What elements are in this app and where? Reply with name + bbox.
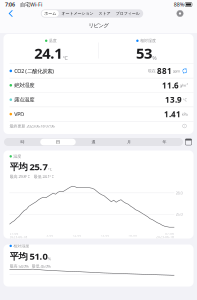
button[interactable]: 日 bbox=[40, 139, 76, 145]
button[interactable]: プロフィール bbox=[113, 10, 142, 17]
staticText: 13.9 bbox=[165, 94, 182, 105]
staticText: 881 bbox=[157, 66, 172, 76]
button[interactable]: 月 bbox=[111, 139, 147, 145]
button[interactable]: Information bbox=[181, 123, 187, 129]
staticText: g/m³ bbox=[179, 83, 187, 88]
button[interactable]: Calendar bbox=[183, 138, 194, 146]
staticText: 11.6 bbox=[162, 80, 179, 91]
staticText: 2023-06-18 bbox=[9, 236, 27, 239]
staticText: 年 bbox=[162, 139, 166, 144]
staticText: 露点温度 bbox=[14, 96, 34, 103]
staticText: ストア bbox=[99, 11, 111, 16]
staticText: 28.0 bbox=[175, 190, 182, 195]
button[interactable]: 絶対湿度 bbox=[3, 78, 193, 92]
staticText: 時 bbox=[20, 139, 24, 144]
staticText: 12:00 bbox=[72, 234, 81, 237]
staticText: 温度 bbox=[49, 38, 57, 43]
staticText: オートメーション bbox=[61, 11, 93, 16]
staticText: 15:00 bbox=[100, 234, 109, 237]
staticText: 平均 25.7 bbox=[9, 160, 47, 173]
staticText: 9:00 bbox=[46, 234, 53, 237]
staticText: 18:00 bbox=[128, 234, 137, 237]
button[interactable]: 時 bbox=[5, 139, 40, 145]
staticText: 07:06 bbox=[165, 232, 174, 235]
staticText: プロフィール bbox=[116, 11, 140, 16]
button[interactable]: 週 bbox=[76, 139, 111, 145]
staticText: 相対湿度 bbox=[140, 38, 156, 43]
staticText: kPa bbox=[181, 111, 187, 117]
staticText: ホーム bbox=[44, 11, 56, 16]
button[interactable]: 露点温度 bbox=[3, 93, 193, 107]
staticText: 絶対湿度 bbox=[14, 82, 34, 89]
staticText: 25.0 bbox=[175, 211, 182, 217]
button[interactable]: オートメーション bbox=[59, 10, 96, 17]
staticText: 1.41 bbox=[164, 109, 181, 119]
staticText: °C bbox=[48, 167, 53, 172]
staticText: 現在 bbox=[148, 68, 156, 73]
button[interactable]: Back bbox=[4, 8, 18, 18]
staticText: 週 bbox=[91, 139, 95, 144]
staticText: 平均 51.0 bbox=[9, 250, 47, 262]
staticText: °C bbox=[63, 54, 68, 61]
staticText: ppm bbox=[172, 68, 180, 73]
staticText: 7:06 bbox=[5, 1, 15, 8]
staticText: VPD bbox=[14, 111, 24, 118]
staticText: 最高 29.8°C 最低 24.1°C bbox=[9, 174, 54, 179]
button[interactable]: VPD bbox=[3, 107, 193, 121]
staticText: 最終更新 2023-06-18 07:06 bbox=[9, 123, 54, 129]
staticText: 月 bbox=[127, 139, 131, 144]
staticText: 88% bbox=[174, 1, 184, 8]
staticText: 相対湿度 bbox=[13, 243, 29, 248]
staticText: i bbox=[184, 124, 185, 128]
button[interactable]: CO2 (二酸化炭素) bbox=[3, 64, 193, 78]
staticText: 24.1 bbox=[34, 43, 62, 63]
staticText: 最高 54.0% 最低 45.0% bbox=[9, 263, 50, 269]
button[interactable]: ストア bbox=[96, 10, 113, 17]
staticText: CO2 (二酸化炭素) bbox=[14, 67, 54, 74]
staticText: 温度 bbox=[13, 154, 21, 159]
staticText: 日 bbox=[56, 139, 60, 144]
button[interactable]: 年 bbox=[147, 139, 182, 145]
staticText: °C bbox=[182, 97, 187, 102]
staticText: % bbox=[152, 54, 156, 61]
staticText: 自宅Wi-Fi bbox=[20, 1, 42, 8]
staticText: % bbox=[48, 256, 51, 261]
staticText: 07:06 bbox=[9, 232, 18, 235]
staticText: 2023-06-18 bbox=[156, 236, 174, 239]
button[interactable]: ホーム bbox=[42, 10, 59, 17]
staticText: 53 bbox=[136, 43, 152, 63]
staticText: リビング bbox=[88, 22, 108, 29]
button[interactable]: Settings bbox=[166, 8, 194, 18]
